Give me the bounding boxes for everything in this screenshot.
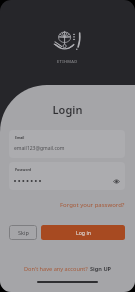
staticText: Log in (76, 229, 91, 236)
staticText: Skip (18, 229, 29, 236)
button[interactable]: Email (9, 130, 125, 158)
staticText: Don't have any account? (24, 265, 90, 273)
staticText: Login (0, 102, 135, 117)
staticText: ETIHMAD (57, 59, 78, 64)
staticText: Password (15, 167, 32, 172)
button[interactable]: Skip (9, 225, 37, 240)
button[interactable]: Forgot your password? (60, 201, 125, 209)
staticText: email123@gmail.com (14, 145, 65, 152)
button[interactable]: Show password (111, 176, 121, 186)
button[interactable]: Password (9, 162, 125, 190)
staticText: Sign UP (90, 265, 112, 273)
button[interactable]: Don't have any account? (24, 265, 112, 273)
staticText: Email (15, 135, 25, 140)
button[interactable]: Log in (41, 225, 125, 240)
